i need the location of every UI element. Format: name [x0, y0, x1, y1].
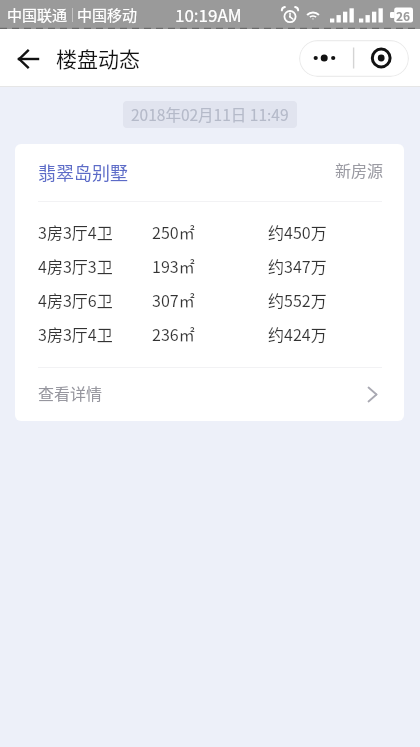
staticText: 3房3厅4卫 — [38, 220, 113, 243]
staticText: 236㎡ — [152, 322, 195, 345]
staticText: 新房源 — [335, 158, 384, 181]
staticText: 4房3厅3卫 — [38, 254, 113, 277]
staticText: 约450万 — [268, 220, 327, 243]
staticText: 10:19AM — [175, 2, 242, 27]
staticText: 26 — [396, 7, 411, 23]
staticText: 250㎡ — [152, 220, 195, 243]
staticText: 约347万 — [268, 254, 327, 277]
button[interactable]: 查看详情 — [15, 368, 404, 421]
staticText: 翡翠岛别墅 — [38, 159, 128, 185]
button[interactable]: Back — [9, 39, 48, 78]
staticText: 4房3厅6卫 — [38, 288, 113, 311]
staticText: 楼盘动态 — [56, 43, 140, 73]
staticText: 中国移动 — [77, 4, 138, 26]
staticText: 3房3厅4卫 — [38, 322, 113, 345]
staticText: 193㎡ — [152, 254, 195, 277]
staticText: 约424万 — [268, 322, 327, 345]
button[interactable]: More menu — [299, 40, 409, 77]
staticText: 约552万 — [268, 288, 327, 311]
staticText: 中国联通 — [7, 4, 68, 26]
staticText: 307㎡ — [152, 288, 195, 311]
staticText: 查看详情 — [38, 381, 103, 404]
staticText: 2018年02月11日 11:49 — [131, 103, 289, 125]
